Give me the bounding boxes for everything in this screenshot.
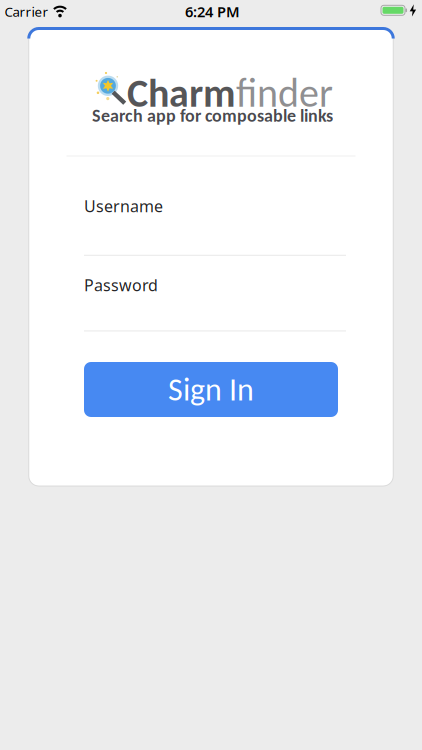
staticText: Username	[84, 195, 163, 217]
staticText: Carrier	[4, 3, 48, 20]
staticText: Search app for composable links	[92, 104, 333, 126]
button[interactable]: Password	[84, 274, 346, 331]
staticText: 6:24 PM	[185, 2, 240, 21]
button[interactable]: Sign In	[84, 362, 338, 417]
staticText: Password	[84, 274, 158, 296]
staticText: Charm	[127, 69, 236, 117]
staticText: finder	[236, 69, 333, 117]
staticText: Sign In	[168, 370, 254, 409]
button[interactable]: Username	[84, 195, 346, 256]
